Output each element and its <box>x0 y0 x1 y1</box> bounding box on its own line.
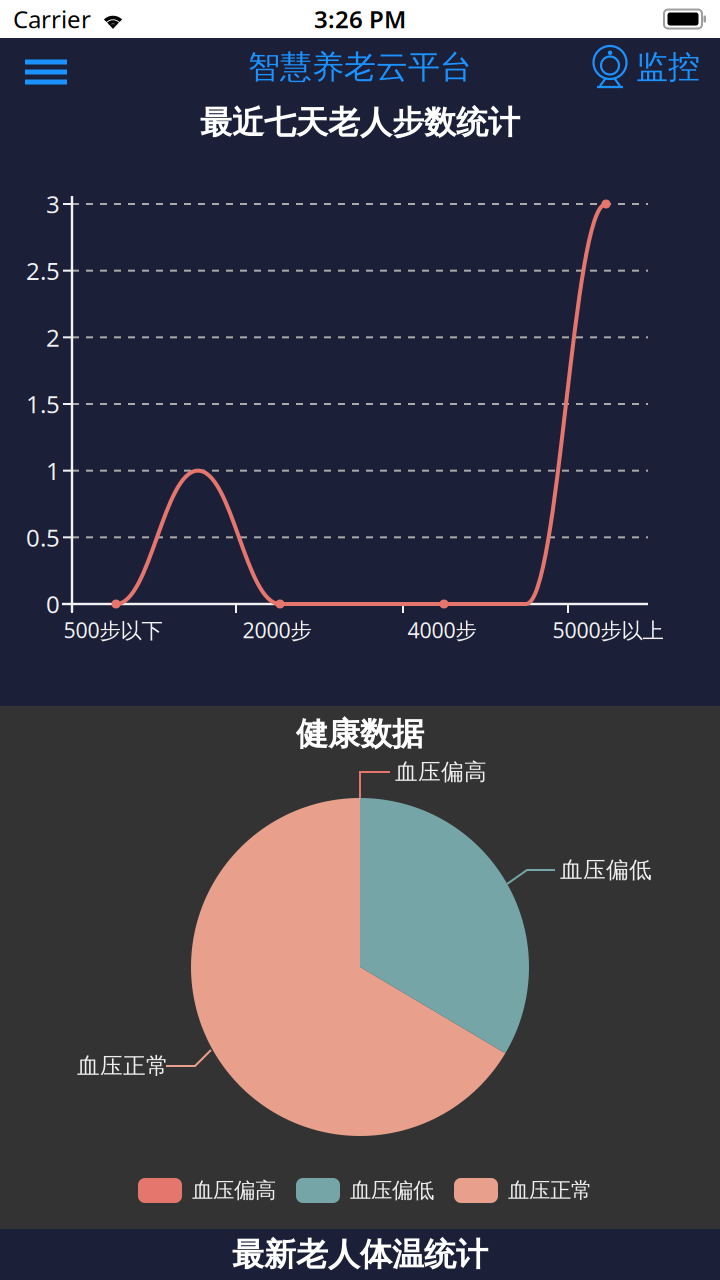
staticText: 5000步以上 <box>552 616 663 644</box>
staticText: 0.5 <box>26 521 60 553</box>
staticText: 健康数据 <box>296 714 424 754</box>
staticText: 1 <box>46 455 60 487</box>
staticText: 2 <box>46 321 60 353</box>
staticText: 血压偏高 <box>192 1177 276 1204</box>
staticText: 500步以下 <box>63 616 162 644</box>
staticText: 血压偏高 <box>395 758 487 786</box>
staticText: 血压偏低 <box>560 856 652 884</box>
staticText: 监控 <box>636 47 700 87</box>
staticText: 血压正常 <box>77 1052 169 1080</box>
staticText: 血压正常 <box>508 1177 592 1204</box>
staticText: 0 <box>46 588 60 620</box>
button[interactable]: Menu <box>2 43 90 101</box>
staticText: 最近七天老人步数统计 <box>200 103 520 142</box>
staticText: 3:26 PM <box>314 3 406 35</box>
staticText: 2.5 <box>26 255 60 287</box>
staticText: 智慧养老云平台 <box>248 47 472 87</box>
staticText: 4000步 <box>407 616 476 644</box>
staticText: 1.5 <box>26 388 60 420</box>
staticText: 2000步 <box>242 616 311 644</box>
staticText: 3 <box>46 188 60 220</box>
staticText: 血压偏低 <box>350 1177 434 1204</box>
button[interactable]: 监控 <box>593 38 720 96</box>
staticText: Carrier <box>13 3 91 35</box>
staticText: 最新老人体温统计 <box>232 1235 488 1274</box>
